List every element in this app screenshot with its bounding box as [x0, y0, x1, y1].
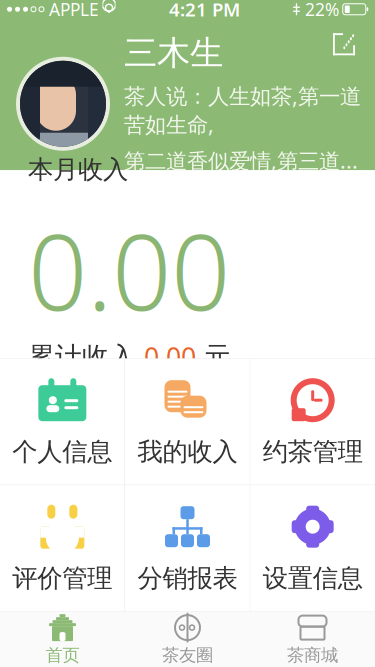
- staticText: 4:21 PM: [169, 0, 240, 22]
- staticText: 茶人说：人生如茶,第一道苦如生命,: [124, 82, 361, 138]
- button[interactable]: 茶友圈: [125, 612, 250, 667]
- staticText: 茶商城: [287, 645, 338, 666]
- staticText: 本月收入: [28, 154, 128, 185]
- button[interactable]: 茶商城: [250, 612, 375, 667]
- staticText: 0.00: [28, 201, 230, 339]
- staticText: 第二道香似爱情,第三道...: [124, 146, 358, 175]
- staticText: 评价管理: [12, 563, 112, 594]
- staticText: 个人信息: [12, 436, 112, 467]
- staticText: 茶友圈: [162, 645, 213, 666]
- staticText: 首页: [45, 645, 79, 666]
- staticText: APPLE: [49, 0, 99, 21]
- button[interactable]: 首页: [0, 612, 125, 667]
- staticText: 约茶管理: [263, 436, 363, 467]
- staticText: 分销报表: [137, 563, 237, 594]
- button[interactable]: 设置信息: [250, 485, 375, 611]
- staticText: 元: [196, 340, 231, 373]
- staticText: 三木生: [124, 33, 223, 74]
- button[interactable]: 约茶管理: [250, 359, 375, 485]
- staticText: 我的收入: [137, 436, 237, 467]
- staticText: 设置信息: [263, 563, 363, 594]
- staticText: 0.00: [144, 339, 196, 375]
- button[interactable]: 我的收入: [125, 359, 250, 485]
- staticText: 累计收入: [28, 340, 144, 373]
- button[interactable]: 分销报表: [125, 485, 250, 611]
- staticText: 22%: [305, 0, 339, 21]
- button[interactable]: Edit profile: [327, 27, 361, 61]
- button[interactable]: 个人信息: [0, 359, 125, 485]
- button[interactable]: 评价管理: [0, 485, 125, 611]
